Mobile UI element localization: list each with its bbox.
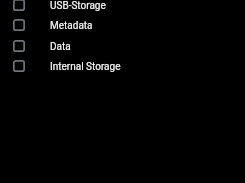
- button[interactable]: Internal Storage: [0, 55, 245, 76]
- staticText: Metadata: [50, 20, 93, 32]
- staticText: USB-Storage: [50, 0, 106, 12]
- staticText: Internal Storage: [50, 61, 121, 73]
- staticText: Data: [50, 41, 71, 53]
- button[interactable]: Data: [0, 35, 245, 56]
- button[interactable]: USB-Storage: [0, 0, 245, 15]
- button[interactable]: Metadata: [0, 14, 245, 35]
